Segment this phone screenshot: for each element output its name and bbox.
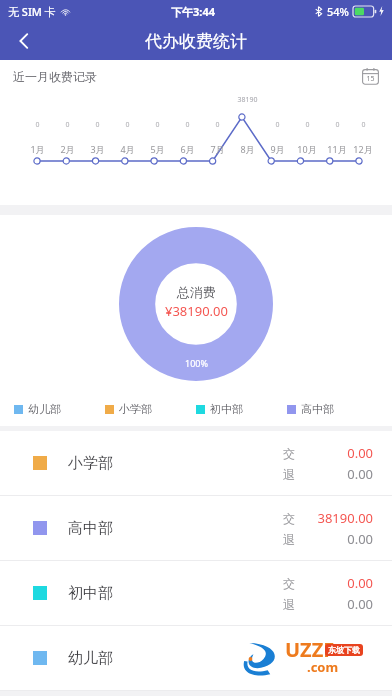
staticText: 0.00 <box>347 530 373 548</box>
staticText: 1月 <box>30 143 45 155</box>
staticText: 7月 <box>210 143 225 155</box>
staticText: 小学部 <box>68 454 113 473</box>
staticText: 38190.00 <box>317 509 373 527</box>
button[interactable]: Back <box>6 23 42 59</box>
staticText: 0 <box>361 120 366 130</box>
staticText: 6月 <box>180 143 195 155</box>
staticText: 100% <box>185 357 208 369</box>
staticText: 代办收费统计 <box>145 31 247 52</box>
staticText: 15 <box>366 74 375 84</box>
staticText: 高中部 <box>301 402 334 416</box>
staticText: 3月 <box>90 143 105 155</box>
staticText: UZZF <box>285 636 335 663</box>
staticText: 54% <box>327 4 349 19</box>
button[interactable]: 小学部 <box>0 431 392 495</box>
staticText: 下午3:44 <box>171 4 215 19</box>
button[interactable]: 初中部 <box>0 561 392 625</box>
staticText: 0.00 <box>347 465 373 483</box>
staticText: 近一月收费记录 <box>13 69 97 84</box>
staticText: 无 SIM 卡 <box>8 4 56 19</box>
staticText: 5月 <box>150 143 165 155</box>
staticText: 0 <box>95 120 100 130</box>
staticText: 交 <box>283 446 295 461</box>
staticText: .com <box>307 658 339 676</box>
staticText: 幼儿部 <box>28 402 61 416</box>
staticText: 初中部 <box>210 402 243 416</box>
staticText: 0 <box>335 120 340 130</box>
other: Pick date <box>362 68 379 85</box>
staticText: 交 <box>283 511 295 526</box>
staticText: ¥38190.00 <box>165 302 228 320</box>
staticText: 退 <box>283 532 295 547</box>
staticText: 幼儿部 <box>68 649 113 668</box>
staticText: 0 <box>185 120 190 130</box>
staticText: 高中部 <box>68 519 113 538</box>
staticText: 8月 <box>240 143 255 155</box>
staticText: 0 <box>305 120 310 130</box>
staticText: 12月 <box>353 143 373 155</box>
staticText: 退 <box>283 467 295 482</box>
staticText: 2月 <box>60 143 75 155</box>
staticText: 东坡下载 <box>328 645 360 655</box>
staticText: 0 <box>125 120 130 130</box>
staticText: 交 <box>283 576 295 591</box>
staticText: 0 <box>65 120 70 130</box>
staticText: 0.00 <box>347 444 373 462</box>
staticText: 0.00 <box>347 574 373 592</box>
staticText: 10月 <box>297 143 317 155</box>
staticText: 总消费 <box>177 284 216 300</box>
staticText: 0 <box>275 120 280 130</box>
staticText: 0 <box>155 120 160 130</box>
staticText: 小学部 <box>119 402 152 416</box>
staticText: 11月 <box>327 143 347 155</box>
button[interactable]: 近一月收费记录 <box>0 60 392 93</box>
staticText: 4月 <box>120 143 135 155</box>
button[interactable]: 幼儿部 <box>0 626 392 690</box>
staticText: 退 <box>283 597 295 612</box>
staticText: 9月 <box>270 143 285 155</box>
staticText: 初中部 <box>68 584 113 603</box>
staticText: 0 <box>215 120 220 130</box>
staticText: 38190 <box>237 95 258 105</box>
button[interactable]: 高中部 <box>0 496 392 560</box>
staticText: 0 <box>35 120 40 130</box>
staticText: 0.00 <box>347 595 373 613</box>
